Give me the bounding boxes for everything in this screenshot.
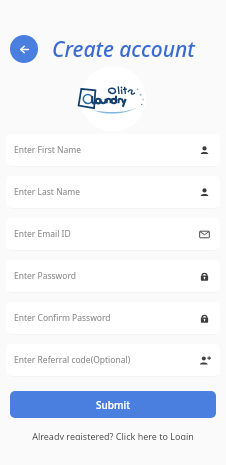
staticText: Create account xyxy=(52,35,195,64)
button[interactable]: Enter Referral code(Optional) xyxy=(6,344,220,376)
button[interactable]: Enter First Name xyxy=(6,134,220,166)
staticText: Enter Referral code(Optional) xyxy=(14,354,198,366)
button[interactable]: Enter Confirm Password xyxy=(6,302,220,334)
button[interactable]: Submit xyxy=(10,391,216,418)
staticText: Enter Email ID xyxy=(14,228,198,240)
staticText: Already registered? Click here to Login xyxy=(32,431,194,440)
button[interactable]: Enter Last Name xyxy=(6,176,220,208)
button[interactable]: Enter Email ID xyxy=(6,218,220,250)
staticText: Enter Confirm Password xyxy=(14,312,198,324)
staticText: Enter Last Name xyxy=(14,186,198,198)
staticText: Enter First Name xyxy=(14,144,198,156)
staticText: Submit xyxy=(96,398,130,412)
button[interactable]: Enter Password xyxy=(6,260,220,292)
button[interactable]: Back xyxy=(10,35,38,63)
staticText: Enter Password xyxy=(14,270,198,282)
